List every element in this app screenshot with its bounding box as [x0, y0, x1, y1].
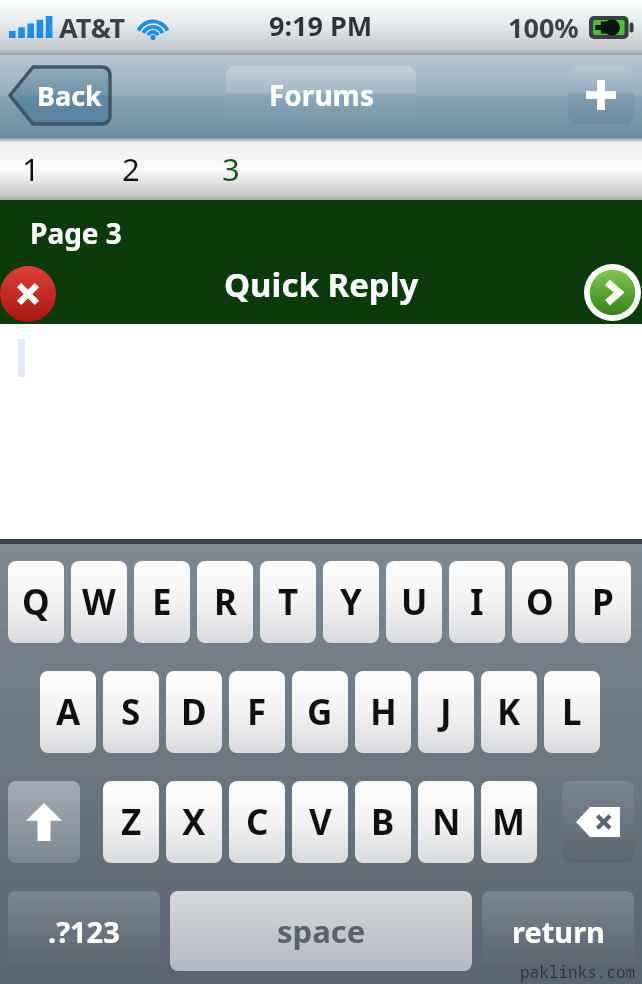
button[interactable]: H — [355, 671, 411, 753]
staticText: V — [309, 798, 332, 846]
staticText: paklinks.com — [520, 961, 636, 983]
staticText: Z — [121, 798, 142, 846]
staticText: T — [278, 578, 299, 626]
staticText: E — [152, 578, 172, 626]
button[interactable]: X — [166, 781, 222, 863]
button[interactable]: Q — [8, 561, 64, 643]
staticText: H — [370, 688, 397, 736]
button[interactable]: Add — [568, 66, 634, 124]
staticText: 3 — [222, 148, 240, 190]
staticText: Q — [22, 578, 50, 626]
staticText: I — [470, 578, 484, 626]
button[interactable]: U — [386, 561, 442, 643]
button[interactable]: N — [418, 781, 474, 863]
staticText: F — [247, 688, 267, 736]
button[interactable]: W — [71, 561, 127, 643]
button[interactable]: Y — [323, 561, 379, 643]
staticText: A — [56, 688, 81, 736]
button[interactable]: Z — [103, 781, 159, 863]
staticText: .?123 — [48, 912, 120, 951]
button[interactable]: T — [260, 561, 316, 643]
button[interactable]: Shift — [8, 781, 80, 863]
button[interactable]: 1 — [0, 138, 62, 200]
staticText: return — [512, 912, 605, 951]
staticText: W — [82, 578, 116, 626]
staticText: U — [401, 578, 428, 626]
staticText: X — [182, 798, 206, 846]
button[interactable]: E — [134, 561, 190, 643]
staticText: Y — [340, 578, 362, 626]
button[interactable]: G — [292, 671, 348, 753]
button[interactable]: D — [166, 671, 222, 753]
button[interactable]: Forums — [226, 66, 416, 124]
staticText: R — [214, 578, 237, 626]
staticText: 1 — [22, 148, 40, 190]
staticText: S — [121, 688, 141, 736]
button[interactable]: J — [418, 671, 474, 753]
button[interactable]: return — [482, 891, 634, 971]
staticText: O — [526, 578, 554, 626]
button[interactable]: B — [355, 781, 411, 863]
staticText: space — [277, 910, 366, 952]
button[interactable]: Backspace — [562, 781, 634, 863]
staticText: P — [592, 578, 614, 626]
button[interactable]: A — [40, 671, 96, 753]
button[interactable]: R — [197, 561, 253, 643]
button[interactable]: M — [481, 781, 537, 863]
button[interactable]: O — [512, 561, 568, 643]
button[interactable]: 2 — [100, 138, 162, 200]
button[interactable]: .?123 — [8, 891, 160, 971]
staticText: Quick Reply — [224, 262, 419, 307]
button[interactable]: F — [229, 671, 285, 753]
staticText: Page 3 — [30, 214, 122, 252]
staticText: 100% — [508, 9, 579, 46]
button[interactable]: P — [575, 561, 631, 643]
button[interactable]: 3 — [200, 138, 262, 200]
button[interactable]: C — [229, 781, 285, 863]
button[interactable]: L — [544, 671, 600, 753]
staticText: C — [246, 798, 269, 846]
button[interactable]: Next — [584, 264, 641, 321]
button[interactable]: V — [292, 781, 348, 863]
button[interactable]: Close — [0, 266, 64, 322]
staticText: Back — [37, 77, 102, 114]
staticText: K — [497, 688, 521, 736]
staticText: G — [307, 688, 333, 736]
staticText: J — [440, 688, 452, 736]
staticText: D — [181, 688, 207, 736]
staticText: M — [492, 798, 526, 846]
staticText: Forums — [269, 76, 374, 114]
staticText: N — [432, 798, 461, 846]
staticText: 2 — [122, 148, 140, 190]
button[interactable]: I — [449, 561, 505, 643]
staticText: L — [562, 688, 582, 736]
button[interactable]: space — [170, 891, 472, 971]
button[interactable]: K — [481, 671, 537, 753]
staticText: B — [371, 798, 395, 846]
staticText: 9:19 PM — [269, 7, 373, 44]
staticText: AT&T — [59, 9, 126, 46]
button[interactable]: S — [103, 671, 159, 753]
button[interactable]: Back — [10, 67, 110, 124]
